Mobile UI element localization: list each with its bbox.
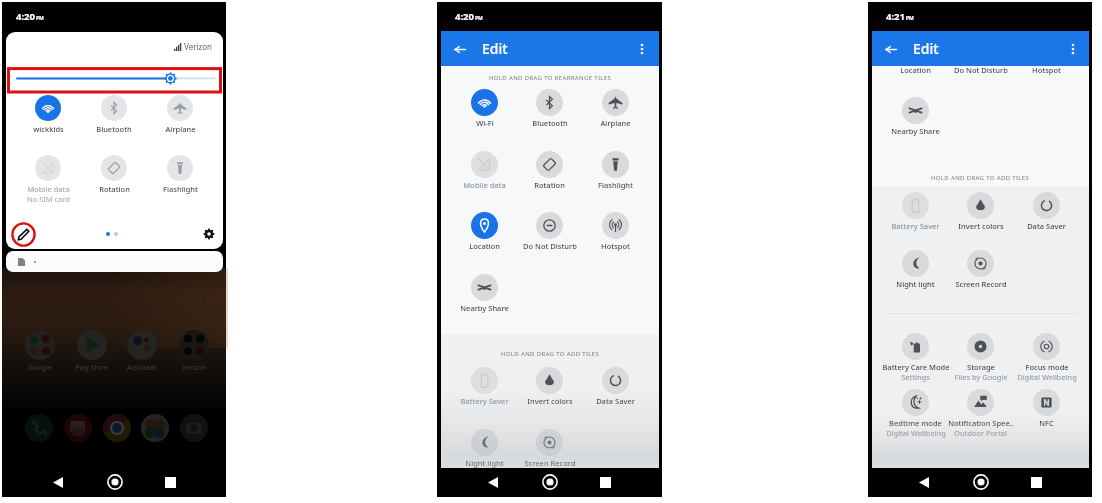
button[interactable]: Verizon — [169, 330, 219, 378]
button[interactable]: Back — [450, 40, 469, 59]
staticText: Focus mode — [1025, 362, 1069, 372]
button[interactable]: Screen Record — [505, 429, 594, 468]
button[interactable]: Do Not Disturb — [505, 212, 594, 251]
staticText: Hotspot — [1032, 65, 1061, 75]
button[interactable]: Airplane — [147, 95, 213, 134]
button[interactable]: Night light — [440, 429, 529, 468]
staticText: HOLD AND DRAG TO REARRANGE TILES — [489, 74, 612, 82]
staticText: Do Not Disturb — [523, 241, 577, 251]
staticText: Location — [900, 65, 931, 75]
button[interactable] — [180, 414, 208, 442]
button[interactable]: Nearby Share — [440, 274, 529, 313]
staticText: Verizon — [184, 41, 213, 52]
button[interactable]: More options — [632, 39, 651, 58]
staticText: Mobile data — [463, 180, 506, 190]
button[interactable]: Back — [483, 472, 503, 492]
button[interactable]: Recents — [595, 472, 615, 492]
staticText: Settings — [901, 372, 930, 382]
staticText: Digital Wellbeing — [886, 428, 946, 438]
button[interactable]: Battery Care Mode — [871, 333, 960, 382]
button[interactable]: Back — [914, 472, 934, 492]
staticText: NFC — [1039, 418, 1054, 428]
button[interactable]: Flashlight — [571, 151, 660, 190]
staticText: Bluetooth — [96, 124, 132, 134]
button[interactable]: Edit — [10, 221, 37, 248]
button[interactable]: Screen Record — [936, 250, 1025, 289]
staticText: PM — [906, 15, 914, 22]
staticText: wickkids — [33, 124, 64, 134]
button[interactable]: Rotation — [505, 151, 594, 190]
button[interactable]: Storage — [936, 333, 1025, 382]
button[interactable]: Back — [48, 472, 68, 492]
button[interactable]: Home — [105, 472, 125, 492]
button[interactable] — [141, 414, 169, 442]
staticText: PM — [475, 15, 483, 22]
button[interactable]: Assistant — [117, 330, 167, 378]
staticText: Digital Wellbeing — [1017, 372, 1077, 382]
button[interactable]: Invert colors — [936, 192, 1025, 231]
button[interactable]: Focus mode — [1002, 333, 1091, 382]
button[interactable]: NFC — [1002, 389, 1091, 428]
button[interactable]: Bedtime mode — [871, 389, 960, 438]
staticText: Notification Spee.. — [948, 418, 1014, 428]
button[interactable]: Recents — [1026, 472, 1046, 492]
staticText: Edit — [482, 39, 508, 58]
staticText: Invert colors — [527, 396, 573, 406]
button[interactable] — [25, 414, 53, 442]
button[interactable]: Location — [440, 212, 529, 251]
staticText: PM — [36, 15, 44, 22]
button[interactable] — [103, 414, 131, 442]
button[interactable]: Bluetooth — [81, 95, 147, 134]
button[interactable]: Settings — [200, 225, 218, 243]
staticText: Wi-Fi — [476, 118, 494, 128]
button[interactable]: Notification Spee.. — [936, 389, 1025, 438]
button[interactable]: Wi-Fi — [440, 89, 529, 128]
button[interactable]: Recents — [160, 472, 180, 492]
button[interactable] — [6, 251, 223, 272]
button[interactable]: Rotation — [81, 155, 147, 194]
button[interactable]: Mobile data — [15, 155, 81, 204]
staticText: Outdoor Portal — [954, 428, 1007, 438]
staticText: 4:20 — [16, 10, 35, 23]
button[interactable]: More options — [1063, 39, 1082, 58]
button[interactable]: Data Saver — [1002, 192, 1091, 231]
button[interactable]: Home — [971, 472, 991, 492]
staticText: Screen Record — [524, 458, 576, 468]
button[interactable]: Google — [15, 330, 65, 378]
button[interactable]: Invert colors — [505, 367, 594, 406]
staticText: No SIM card — [27, 194, 70, 204]
button[interactable] — [64, 414, 92, 442]
button[interactable]: Nearby Share — [871, 97, 960, 136]
staticText: Do Not Disturb — [954, 65, 1008, 75]
button[interactable]: Bluetooth — [505, 89, 594, 128]
staticText: Bedtime mode — [889, 418, 942, 428]
staticText: HOLD AND DRAG TO ADD TILES — [931, 174, 1030, 182]
button[interactable]: Battery Saver — [871, 192, 960, 231]
button[interactable]: Back — [881, 40, 900, 59]
staticText: Airplane — [165, 124, 196, 134]
staticText: Night light — [896, 279, 935, 289]
button[interactable]: Battery Saver — [440, 367, 529, 406]
staticText: HOLD AND DRAG TO ADD TILES — [501, 350, 600, 358]
button[interactable]: wickkids — [15, 95, 81, 134]
button[interactable]: Hotspot — [571, 212, 660, 251]
button[interactable]: Data Saver — [571, 367, 660, 406]
staticText: Airplane — [600, 118, 631, 128]
staticText: Edit — [913, 39, 939, 58]
staticText: Rotation — [534, 180, 565, 190]
button[interactable]: Home — [540, 472, 560, 492]
staticText: Invert colors — [958, 221, 1004, 231]
staticText: Rotation — [99, 184, 130, 194]
staticText: Night light — [465, 458, 504, 468]
button[interactable]: Flashlight — [147, 155, 213, 194]
staticText: Nearby Share — [891, 126, 940, 136]
staticText: Google — [28, 363, 52, 373]
button[interactable]: Night light — [871, 250, 960, 289]
button[interactable]: Mobile data — [440, 151, 529, 190]
staticText: 4:20 — [455, 10, 474, 23]
button[interactable]: Play Store — [66, 330, 116, 378]
staticText: Battery Saver — [460, 396, 509, 406]
staticText: Screen Record — [955, 279, 1007, 289]
staticText: Mobile data — [27, 184, 70, 194]
button[interactable]: Airplane — [571, 89, 660, 128]
